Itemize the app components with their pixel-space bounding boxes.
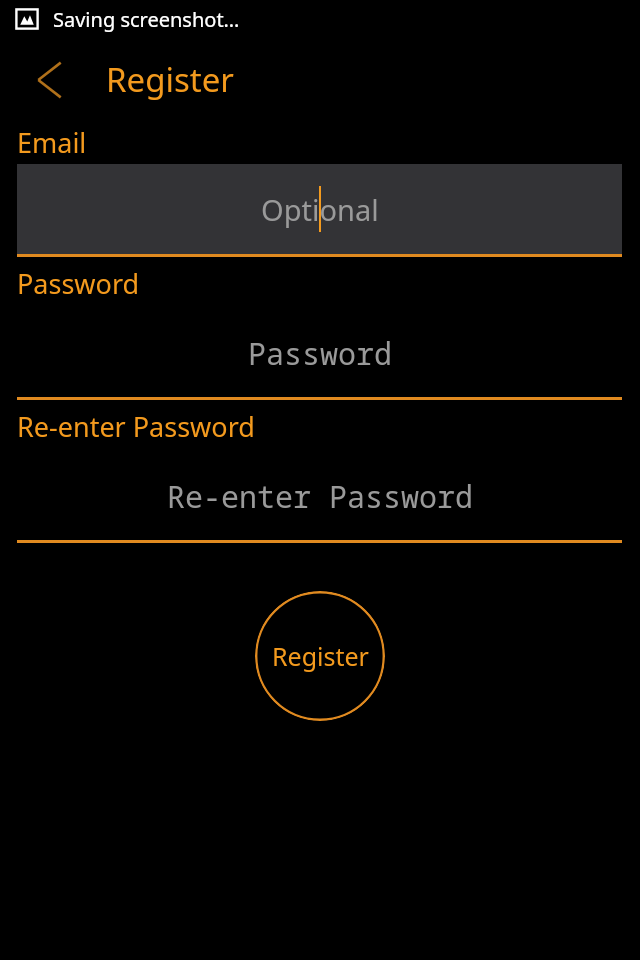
button[interactable]: Optional bbox=[17, 164, 622, 257]
staticText: Register bbox=[272, 639, 369, 673]
staticText: Optional bbox=[261, 190, 379, 229]
staticText: Re-enter Password bbox=[167, 476, 473, 517]
staticText: Saving screenshot… bbox=[53, 6, 240, 33]
staticText: Re-enter Password bbox=[17, 408, 255, 445]
other: Screenshot saved bbox=[14, 7, 40, 31]
staticText: Register bbox=[106, 57, 234, 102]
staticText: Email bbox=[17, 124, 87, 161]
button[interactable]: Re-enter Password bbox=[17, 452, 622, 543]
button[interactable]: Back bbox=[26, 52, 82, 108]
staticText: Password bbox=[248, 333, 392, 374]
button[interactable]: Password bbox=[17, 309, 622, 400]
button[interactable]: Register bbox=[255, 591, 385, 721]
staticText: Password bbox=[17, 265, 140, 302]
